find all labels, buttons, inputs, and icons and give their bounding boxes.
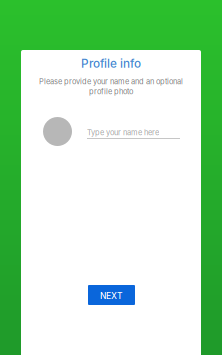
- staticText: NEXT: [100, 291, 123, 301]
- button[interactable]: Type your name here: [87, 127, 180, 139]
- button[interactable]: NEXT: [88, 285, 135, 305]
- staticText: Please provide your name and an optional: [39, 77, 183, 86]
- staticText: Type your name here: [87, 128, 159, 137]
- button[interactable]: Add profile photo: [43, 117, 72, 146]
- staticText: Profile info: [81, 56, 141, 71]
- staticText: profile photo: [89, 87, 133, 96]
